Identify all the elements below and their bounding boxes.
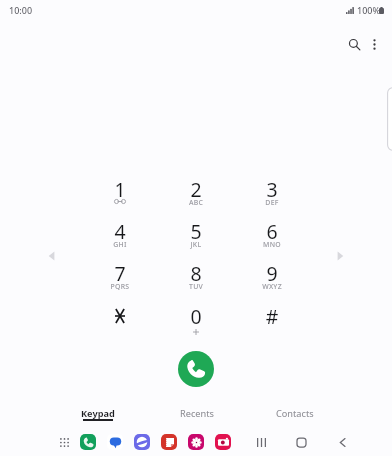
button[interactable]: 5	[158, 211, 234, 253]
staticText: 6	[234, 218, 310, 245]
button[interactable]: Recents	[148, 403, 246, 427]
staticText: GHI	[82, 240, 158, 249]
button[interactable]: 3	[234, 169, 310, 211]
staticText: 9	[234, 260, 310, 287]
staticText: 8	[158, 260, 234, 287]
staticText: 10:00	[9, 4, 33, 16]
staticText: Contacts	[276, 407, 314, 420]
staticText: MNO	[234, 240, 310, 249]
staticText: 3	[234, 176, 310, 203]
button[interactable]: 9	[234, 253, 310, 295]
staticText: DEF	[234, 198, 310, 207]
button[interactable]: Messages	[107, 434, 123, 450]
staticText: ABC	[158, 198, 234, 207]
staticText: 4	[82, 218, 158, 245]
button[interactable]: Gallery	[188, 434, 204, 450]
staticText: 100%	[357, 4, 381, 16]
button[interactable]: Phone	[80, 434, 96, 450]
staticText: Recents	[180, 407, 214, 420]
staticText: 1	[82, 176, 158, 203]
button[interactable]: Camera	[215, 434, 231, 450]
button[interactable]: 8	[158, 253, 234, 295]
button[interactable]: 4	[82, 211, 158, 253]
button[interactable]: 2	[158, 169, 234, 211]
staticText: #	[234, 303, 310, 330]
button[interactable]: Contacts	[246, 403, 344, 427]
staticText: 7	[82, 260, 158, 287]
button[interactable]: Notes	[161, 434, 177, 450]
button[interactable]	[82, 296, 158, 338]
button[interactable]: #	[234, 296, 310, 338]
button[interactable]: More options	[356, 26, 392, 62]
staticText: 5	[158, 218, 234, 245]
button[interactable]: Home	[292, 433, 310, 451]
button[interactable]: Internet	[134, 434, 150, 450]
staticText: Keypad	[81, 407, 115, 420]
button[interactable]: 0	[158, 296, 234, 338]
button[interactable]: 1	[82, 169, 158, 211]
button[interactable]: 7	[82, 253, 158, 295]
button[interactable]: Search	[336, 26, 372, 62]
button[interactable]: Apps	[57, 435, 72, 450]
button[interactable]: 6	[234, 211, 310, 253]
staticText: TUV	[158, 282, 234, 291]
staticText: JKL	[158, 240, 234, 249]
button[interactable]: Call	[178, 351, 214, 387]
staticText: WXYZ	[234, 282, 310, 291]
staticText: 0	[158, 303, 234, 330]
staticText: PQRS	[82, 282, 158, 291]
button[interactable]: Keypad	[49, 403, 147, 427]
button[interactable]: Back	[333, 433, 351, 451]
staticText: 2	[158, 176, 234, 203]
button[interactable]: Recents	[252, 433, 270, 451]
